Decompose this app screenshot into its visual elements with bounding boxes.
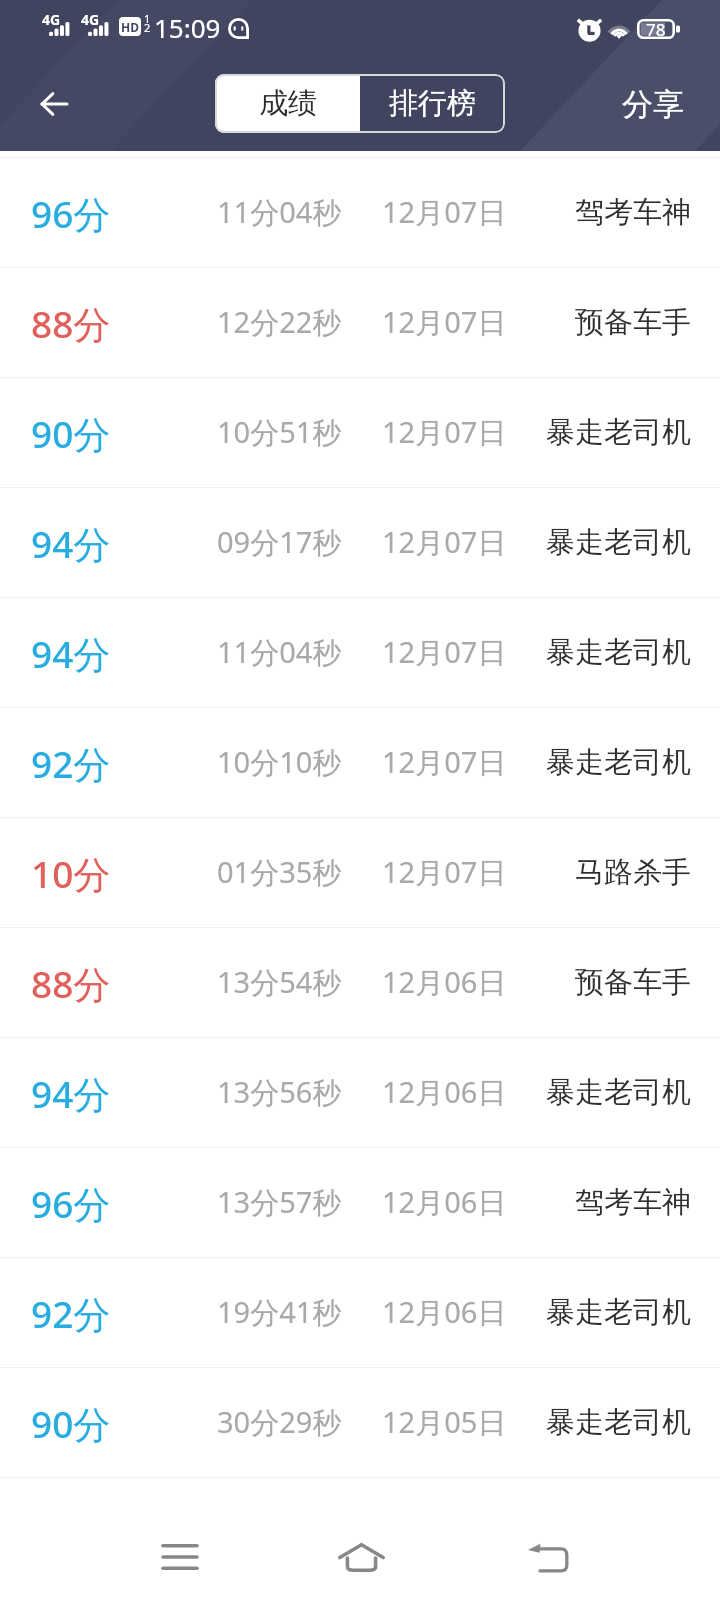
staticText: 12月06日 (382, 1292, 507, 1332)
staticText: 12月07日 (382, 852, 507, 892)
button[interactable]: 94分 (0, 487, 720, 597)
staticText: 12月07日 (382, 192, 507, 232)
staticText: 暴走老司机 (546, 744, 691, 781)
staticText: 92分 (31, 738, 111, 789)
staticText: 12月06日 (382, 962, 507, 1002)
staticText: 暴走老司机 (546, 524, 691, 561)
staticText: 暴走老司机 (546, 634, 691, 671)
button[interactable]: 96分 (0, 157, 720, 267)
staticText: 11分04秒 (217, 192, 342, 232)
button[interactable]: 返回 (503, 1512, 593, 1600)
staticText: 12月07日 (382, 412, 507, 452)
staticText: 12月06日 (382, 1182, 507, 1222)
staticText: 4G (42, 10, 61, 29)
staticText: 预备车手 (575, 304, 691, 341)
button[interactable]: 成绩 (215, 74, 360, 133)
staticText: 1 (144, 11, 151, 26)
staticText: 96分 (31, 1178, 111, 1229)
button[interactable]: 菜单 (135, 1512, 225, 1600)
staticText: 12月07日 (382, 632, 507, 672)
staticText: 90分 (31, 408, 111, 459)
staticText: 暴走老司机 (546, 1404, 691, 1441)
staticText: 成绩 (259, 85, 317, 122)
staticText: 92分 (31, 1288, 111, 1339)
staticText: 10分 (31, 848, 111, 899)
staticText: 12分22秒 (217, 302, 342, 342)
staticText: 12月06日 (382, 1072, 507, 1112)
staticText: 2 (144, 20, 151, 35)
staticText: 排行榜 (389, 85, 476, 122)
button[interactable]: 排行榜 (360, 74, 505, 133)
staticText: 90分 (31, 1398, 111, 1449)
staticText: 马路杀手 (575, 854, 691, 891)
staticText: 88分 (31, 958, 111, 1009)
staticText: 88分 (31, 298, 111, 349)
staticText: 12月07日 (382, 522, 507, 562)
button[interactable]: 92分 (0, 707, 720, 817)
button[interactable]: 92分 (0, 1257, 720, 1367)
staticText: 94分 (31, 628, 111, 679)
staticText: 94分 (31, 1068, 111, 1119)
staticText: 12月07日 (382, 302, 507, 342)
button[interactable]: 90分 (0, 377, 720, 487)
button[interactable]: 94分 (0, 1037, 720, 1147)
staticText: HD (121, 19, 139, 35)
staticText: 96分 (31, 188, 111, 239)
button[interactable]: 94分 (0, 597, 720, 707)
button[interactable]: 分享 (620, 74, 686, 133)
staticText: 10分10秒 (217, 742, 342, 782)
staticText: 13分56秒 (217, 1072, 342, 1112)
button[interactable]: 返回 (26, 76, 82, 132)
button[interactable]: 88分 (0, 927, 720, 1037)
staticText: 94分 (31, 518, 111, 569)
staticText: 暴走老司机 (546, 414, 691, 451)
staticText: 驾考车神 (575, 1184, 691, 1221)
staticText: 暴走老司机 (546, 1294, 691, 1331)
staticText: 30分29秒 (217, 1402, 342, 1442)
staticText: 驾考车神 (575, 194, 691, 231)
staticText: 12月07日 (382, 742, 507, 782)
staticText: 10分51秒 (217, 412, 342, 452)
staticText: 预备车手 (575, 964, 691, 1001)
staticText: 19分41秒 (217, 1292, 342, 1332)
button[interactable]: 90分 (0, 1367, 720, 1477)
button[interactable]: 96分 (0, 1147, 720, 1257)
staticText: 暴走老司机 (546, 1074, 691, 1111)
button[interactable]: 主页 (316, 1512, 406, 1600)
staticText: 12月05日 (382, 1402, 507, 1442)
staticText: 09分17秒 (217, 522, 342, 562)
staticText: 11分04秒 (217, 632, 342, 672)
button[interactable]: 10分 (0, 817, 720, 927)
staticText: 78 (646, 18, 666, 38)
staticText: 4G (81, 10, 100, 29)
staticText: 01分35秒 (217, 852, 342, 892)
button[interactable]: 88分 (0, 267, 720, 377)
staticText: 13分57秒 (217, 1182, 342, 1222)
staticText: 13分54秒 (217, 962, 342, 1002)
staticText: 15:09 (154, 10, 221, 45)
staticText: 分享 (622, 85, 684, 124)
